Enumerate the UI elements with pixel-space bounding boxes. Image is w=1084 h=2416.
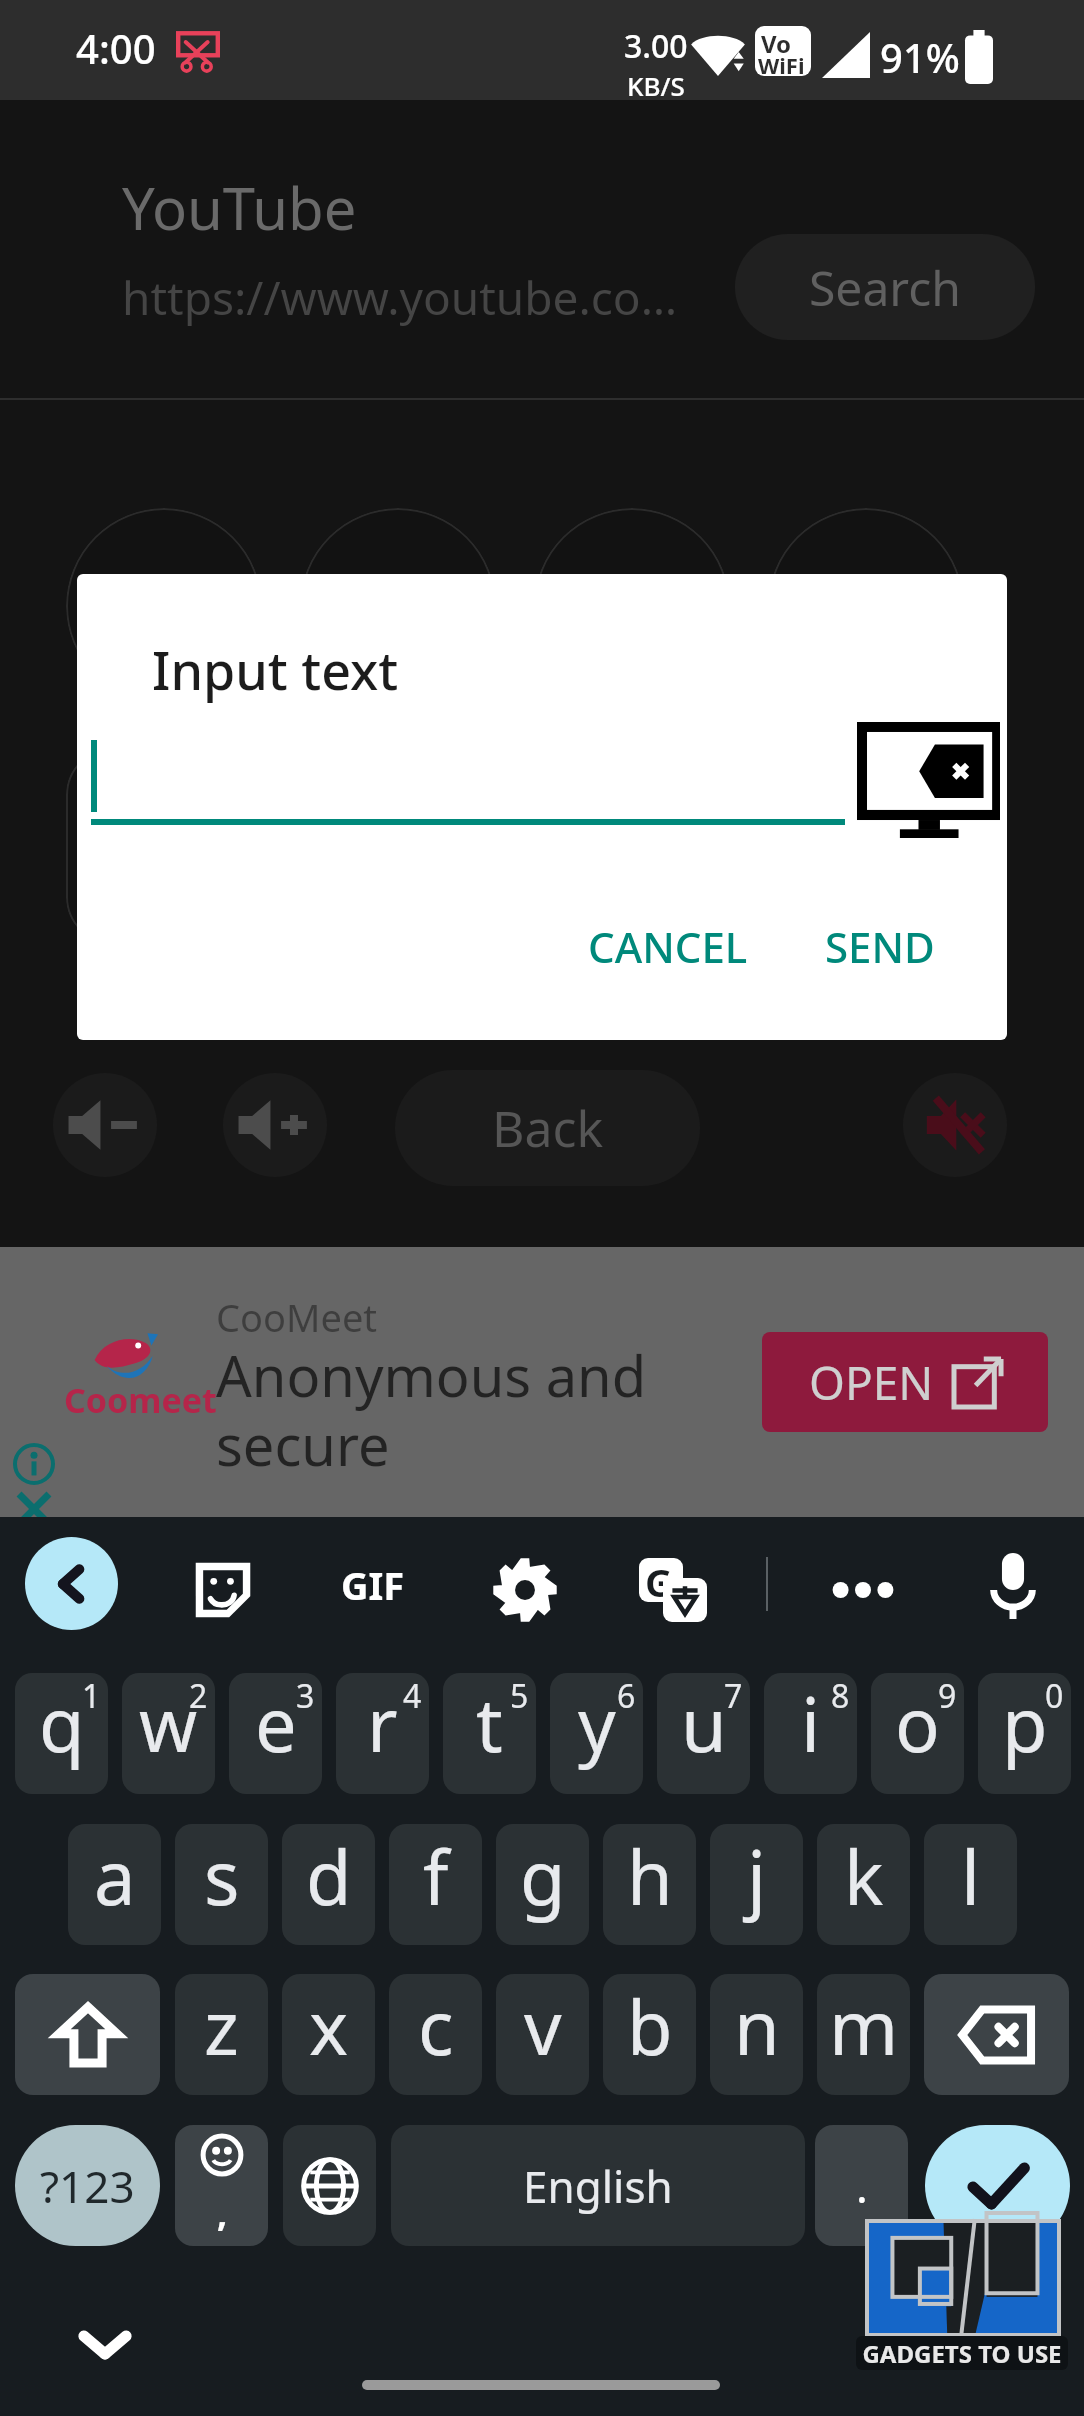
- button[interactable]: x: [282, 1974, 375, 2095]
- staticText: Vo: [761, 27, 792, 60]
- staticText: l: [961, 1826, 981, 1927]
- button[interactable]: w: [122, 1673, 215, 1794]
- button[interactable]: ,: [175, 2125, 268, 2246]
- staticText: e: [255, 1673, 297, 1774]
- staticText: 2: [189, 1674, 208, 1718]
- button[interactable]: g: [496, 1824, 589, 1945]
- button[interactable]: h: [603, 1824, 696, 1945]
- staticText: x: [309, 1976, 349, 2077]
- button[interactable]: c: [389, 1974, 482, 2095]
- button[interactable]: k: [817, 1824, 910, 1945]
- staticText: n: [734, 1976, 780, 2077]
- staticText: z: [204, 1976, 239, 2077]
- button[interactable]: Shift: [15, 1974, 160, 2095]
- button[interactable]: n: [710, 1974, 803, 2095]
- staticText: 4:00: [76, 21, 156, 75]
- button[interactable]: j: [710, 1824, 803, 1945]
- button[interactable]: Hide keyboard: [72, 2312, 138, 2378]
- staticText: j: [747, 1826, 767, 1927]
- button[interactable]: l: [924, 1824, 1017, 1945]
- staticText: r: [367, 1673, 398, 1774]
- staticText: Input text: [152, 634, 399, 705]
- button[interactable]: ?123: [15, 2125, 160, 2246]
- staticText: c: [418, 1976, 454, 2077]
- button[interactable]: Backspace: [924, 1974, 1069, 2095]
- button[interactable]: GIF: [338, 1559, 408, 1609]
- staticText: 3.00: [624, 24, 688, 68]
- button[interactable]: d: [282, 1824, 375, 1945]
- staticText: Coomeet: [64, 1377, 217, 1423]
- staticText: Back: [492, 1094, 604, 1162]
- button[interactable]: m: [817, 1974, 910, 2095]
- staticText: G: [645, 1558, 673, 1600]
- button[interactable]: b: [603, 1974, 696, 2095]
- staticText: k: [844, 1826, 884, 1927]
- button[interactable]: Sticker: [188, 1555, 258, 1625]
- button[interactable]: [66, 508, 262, 704]
- button[interactable]: Mute: [903, 1073, 1007, 1177]
- button[interactable]: SEND: [811, 908, 949, 985]
- button[interactable]: [534, 748, 730, 944]
- staticText: 91%: [880, 30, 960, 84]
- button[interactable]: Enter: [925, 2125, 1070, 2246]
- staticText: Search: [809, 255, 961, 320]
- button[interactable]: CANCEL: [574, 908, 762, 985]
- staticText: h: [627, 1826, 673, 1927]
- button[interactable]: OPEN: [762, 1332, 1048, 1432]
- button[interactable]: q: [15, 1673, 108, 1794]
- button[interactable]: Search: [735, 234, 1035, 340]
- button[interactable]: z: [175, 1974, 268, 2095]
- staticText: w: [139, 1673, 198, 1774]
- button[interactable]: Voice input: [978, 1551, 1048, 1621]
- staticText: a: [94, 1826, 136, 1927]
- staticText: t: [476, 1673, 503, 1774]
- staticText: CANCEL: [588, 918, 748, 975]
- button[interactable]: o: [871, 1673, 964, 1794]
- staticText: .: [856, 2156, 868, 2216]
- button[interactable]: English: [391, 2125, 805, 2246]
- staticText: ?123: [40, 2156, 135, 2216]
- button[interactable]: f: [389, 1824, 482, 1945]
- button[interactable]: v: [496, 1974, 589, 2095]
- button[interactable]: t: [443, 1673, 536, 1794]
- button[interactable]: More options: [828, 1555, 898, 1625]
- staticText: 1: [82, 1674, 101, 1718]
- button[interactable]: Back: [395, 1070, 700, 1186]
- button[interactable]: [534, 508, 730, 704]
- button[interactable]: e: [229, 1673, 322, 1794]
- button[interactable]: Change language: [283, 2125, 376, 2246]
- button[interactable]: p: [978, 1673, 1071, 1794]
- button[interactable]: i: [764, 1673, 857, 1794]
- staticText: GADGETS TO USE: [862, 2337, 1062, 2370]
- button[interactable]: Translate: [638, 1555, 708, 1625]
- button[interactable]: .: [815, 2125, 908, 2246]
- button[interactable]: [300, 508, 496, 704]
- button[interactable]: [768, 508, 964, 704]
- button[interactable]: Volume up: [223, 1073, 327, 1177]
- button[interactable]: [768, 748, 964, 944]
- staticText: i: [801, 1673, 821, 1774]
- button[interactable]: r: [336, 1673, 429, 1794]
- button[interactable]: Settings: [490, 1555, 560, 1625]
- button[interactable]: [66, 748, 262, 944]
- staticText: ,: [217, 2188, 228, 2237]
- staticText: CooMeet: [216, 1291, 378, 1343]
- staticText: https://www.youtube.co…: [122, 266, 678, 329]
- button[interactable]: s: [175, 1824, 268, 1945]
- staticText: SEND: [825, 918, 935, 975]
- staticText: m: [829, 1976, 899, 2077]
- button[interactable]: Back: [25, 1537, 118, 1630]
- button[interactable]: [300, 748, 496, 944]
- button[interactable]: Volume down: [53, 1073, 157, 1177]
- staticText: g: [520, 1826, 566, 1927]
- staticText: Anonymous and secure: [216, 1337, 647, 1483]
- staticText: 4: [403, 1674, 422, 1718]
- button[interactable]: y: [550, 1673, 643, 1794]
- staticText: 7: [724, 1674, 743, 1718]
- button[interactable]: Clear text on TV: [857, 722, 1000, 838]
- staticText: KB/S: [627, 68, 685, 103]
- button[interactable]: u: [657, 1673, 750, 1794]
- staticText: WiFi: [758, 50, 805, 76]
- button[interactable]: a: [68, 1824, 161, 1945]
- staticText: p: [1002, 1673, 1048, 1774]
